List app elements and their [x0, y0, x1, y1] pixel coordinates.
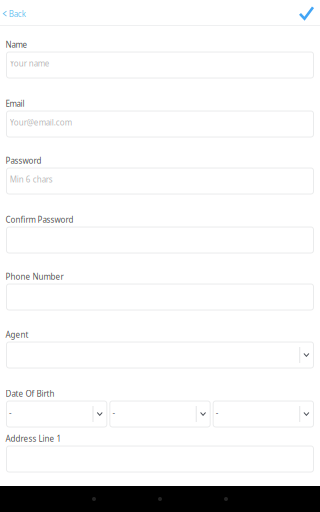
button[interactable]: Back [0, 0, 34, 26]
staticText: Your name [10, 58, 50, 69]
button[interactable]: Year [213, 401, 313, 427]
staticText: Min 6 chars [10, 174, 53, 185]
staticText: Phone Number [5, 271, 63, 282]
button[interactable]: Phone Number [6, 284, 313, 310]
staticText: - [216, 408, 219, 418]
staticText: Your@email.com [10, 117, 72, 128]
staticText: Confirm Password [5, 214, 73, 225]
staticText: Back [9, 8, 26, 19]
staticText: Password [5, 155, 41, 166]
button[interactable]: Address Line 1 [6, 446, 313, 472]
button[interactable]: Name [6, 52, 313, 78]
button[interactable]: Day [6, 401, 107, 427]
staticText: Agent [5, 329, 28, 340]
staticText: Email [5, 98, 24, 109]
button[interactable]: Password [6, 168, 313, 194]
staticText: - [9, 408, 12, 418]
button[interactable]: Home [140, 486, 180, 512]
button[interactable]: Confirm Password [6, 227, 313, 253]
staticText: Name [5, 39, 27, 50]
button[interactable]: Save [289, 0, 320, 26]
staticText: Address Line 1 [5, 433, 61, 444]
button[interactable]: Email [6, 111, 313, 137]
button[interactable]: Agent [6, 342, 313, 368]
staticText: - [112, 408, 115, 418]
button[interactable]: Recents [206, 486, 246, 512]
button[interactable]: Back [74, 486, 114, 512]
button[interactable]: Month [110, 401, 210, 427]
staticText: Date Of Birth [5, 388, 54, 399]
